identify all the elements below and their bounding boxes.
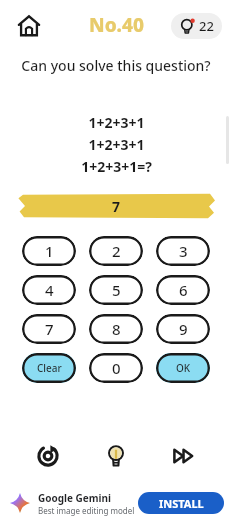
- button[interactable]: Skip: [164, 436, 204, 476]
- staticText: 1+2+3+1: [88, 135, 145, 154]
- button[interactable]: Home: [12, 9, 46, 43]
- button[interactable]: 3: [156, 236, 210, 266]
- staticText: 3: [179, 241, 188, 261]
- staticText: INSTALL: [159, 496, 204, 511]
- staticText: No.40: [89, 12, 144, 38]
- button[interactable]: Hint: [96, 436, 136, 476]
- button[interactable]: 7: [16, 192, 216, 220]
- button[interactable]: 6: [156, 275, 210, 305]
- button[interactable]: Restart: [28, 436, 68, 476]
- staticText: 4: [45, 280, 54, 300]
- staticText: 2: [112, 241, 121, 261]
- staticText: Clear: [37, 361, 62, 375]
- staticText: Best image editing model: [38, 505, 135, 516]
- staticText: 6: [179, 280, 188, 300]
- button[interactable]: Clear: [22, 353, 76, 383]
- staticText: Can you solve this question?: [0, 56, 232, 75]
- staticText: 1: [45, 241, 54, 261]
- button[interactable]: 4: [22, 275, 76, 305]
- button[interactable]: 1: [22, 236, 76, 266]
- staticText: 1+2+3+1=?: [81, 157, 152, 176]
- staticText: OK: [176, 361, 191, 375]
- staticText: 0: [112, 358, 121, 378]
- staticText: Google Gemini: [38, 491, 112, 505]
- button[interactable]: 9: [156, 314, 210, 344]
- staticText: 1+2+3+1: [88, 113, 145, 132]
- button[interactable]: Google Gemini: [0, 486, 232, 520]
- staticText: 9: [179, 319, 188, 339]
- staticText: 7: [45, 319, 54, 339]
- staticText: 7: [112, 197, 121, 216]
- button[interactable]: 7: [22, 314, 76, 344]
- button[interactable]: 0: [89, 353, 143, 383]
- button[interactable]: 5: [89, 275, 143, 305]
- button[interactable]: OK: [156, 353, 210, 383]
- button[interactable]: INSTALL: [138, 492, 224, 514]
- staticText: 8: [112, 319, 121, 339]
- staticText: 22: [199, 17, 214, 35]
- button[interactable]: 22: [171, 13, 222, 39]
- button[interactable]: 8: [89, 314, 143, 344]
- staticText: 5: [112, 280, 121, 300]
- button[interactable]: 2: [89, 236, 143, 266]
